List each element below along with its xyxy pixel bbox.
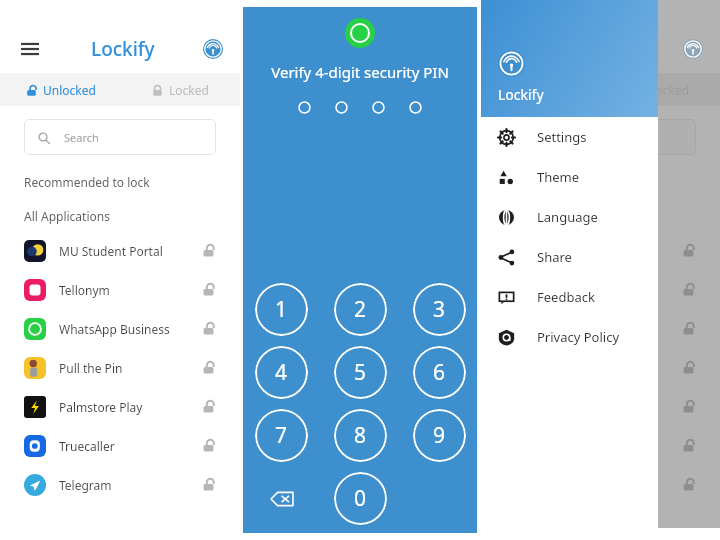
staticText: Tellonym bbox=[59, 282, 201, 298]
button[interactable]: Locked bbox=[120, 73, 240, 106]
button[interactable]: 3 bbox=[413, 283, 466, 336]
staticText: All Applications bbox=[505, 208, 591, 224]
button[interactable]: Privacy Policy bbox=[498, 317, 658, 357]
staticText: Lockify bbox=[91, 36, 155, 62]
staticText: 3 bbox=[433, 295, 446, 324]
staticText: Palmstore Play bbox=[59, 399, 201, 415]
staticText: All Applications bbox=[24, 208, 110, 224]
button[interactable]: 9 bbox=[413, 409, 466, 462]
staticText: Palmstore Play bbox=[540, 399, 681, 415]
button[interactable]: App logo bbox=[682, 38, 704, 60]
staticText: Unlocked bbox=[43, 82, 96, 98]
staticText: Tellonym bbox=[540, 282, 681, 298]
button[interactable]: 2 bbox=[334, 283, 387, 336]
button[interactable]: Search bbox=[24, 119, 216, 155]
button[interactable]: WhatsApp Business bbox=[24, 309, 216, 348]
button[interactable]: Theme bbox=[498, 157, 658, 197]
button[interactable]: Tellonym bbox=[505, 270, 696, 309]
button[interactable]: Telegram bbox=[505, 465, 696, 504]
staticText: 2 bbox=[354, 295, 367, 324]
staticText: 6 bbox=[433, 358, 446, 387]
staticText: Lockify bbox=[498, 85, 544, 104]
button[interactable]: Palmstore Play bbox=[24, 387, 216, 426]
staticText: Recommended to lock bbox=[24, 174, 150, 190]
staticText: Feedback bbox=[537, 288, 595, 306]
staticText: Verify 4-digit security PIN bbox=[271, 62, 449, 82]
staticText: Theme bbox=[537, 168, 580, 186]
button[interactable]: Palmstore Play bbox=[505, 387, 696, 426]
staticText: Pull the Pin bbox=[59, 360, 201, 376]
button[interactable]: Truecaller bbox=[24, 426, 216, 465]
staticText: Lockify bbox=[572, 36, 636, 62]
staticText: 1 bbox=[275, 295, 288, 324]
button[interactable]: App logo bbox=[202, 38, 224, 60]
button[interactable]: Language bbox=[498, 197, 658, 237]
staticText: Privacy Policy bbox=[537, 328, 620, 346]
button[interactable]: 0 bbox=[334, 472, 387, 525]
staticText: Settings bbox=[537, 128, 587, 146]
staticText: Search bbox=[64, 130, 99, 145]
staticText: Unlocked bbox=[523, 82, 576, 98]
button[interactable]: Tellonym bbox=[24, 270, 216, 309]
button[interactable]: 1 bbox=[255, 283, 308, 336]
staticText: Language bbox=[537, 208, 598, 226]
staticText: Truecaller bbox=[540, 438, 681, 454]
button[interactable]: Backspace bbox=[255, 472, 308, 525]
staticText: MU Student Portal bbox=[540, 243, 681, 259]
button[interactable]: Telegram bbox=[24, 465, 216, 504]
staticText: 0 bbox=[354, 484, 367, 513]
staticText: Truecaller bbox=[59, 438, 201, 454]
button[interactable]: Pull the Pin bbox=[505, 348, 696, 387]
button[interactable]: Search bbox=[505, 119, 696, 155]
staticText: 5 bbox=[354, 358, 367, 387]
staticText: Search bbox=[545, 130, 580, 145]
staticText: Locked bbox=[649, 82, 689, 98]
staticText: 4 bbox=[275, 358, 288, 387]
staticText: 9 bbox=[433, 421, 446, 450]
staticText: 8 bbox=[354, 421, 367, 450]
button[interactable]: 6 bbox=[413, 346, 466, 399]
button[interactable]: 8 bbox=[334, 409, 387, 462]
staticText: 7 bbox=[275, 421, 288, 450]
button[interactable]: Locked bbox=[600, 73, 720, 106]
button[interactable]: 4 bbox=[255, 346, 308, 399]
staticText: WhatsApp Business bbox=[59, 321, 201, 337]
button[interactable]: WhatsApp Business bbox=[505, 309, 696, 348]
button[interactable]: 5 bbox=[334, 346, 387, 399]
staticText: Telegram bbox=[540, 477, 681, 493]
button[interactable]: Unlocked bbox=[481, 73, 600, 106]
staticText: Pull the Pin bbox=[540, 360, 681, 376]
staticText: Locked bbox=[169, 82, 209, 98]
staticText: MU Student Portal bbox=[59, 243, 201, 259]
button[interactable]: Menu bbox=[16, 35, 44, 63]
button[interactable]: Truecaller bbox=[505, 426, 696, 465]
staticText: Telegram bbox=[59, 477, 201, 493]
button[interactable]: 7 bbox=[255, 409, 308, 462]
button[interactable]: Unlocked bbox=[0, 73, 120, 106]
staticText: Recommended to lock bbox=[505, 174, 631, 190]
button[interactable]: Feedback bbox=[498, 277, 658, 317]
button[interactable]: Pull the Pin bbox=[24, 348, 216, 387]
button[interactable]: MU Student Portal bbox=[505, 231, 696, 270]
button[interactable]: Share bbox=[498, 237, 658, 277]
button[interactable]: Settings bbox=[498, 117, 658, 157]
button[interactable]: Menu bbox=[497, 35, 525, 63]
staticText: Share bbox=[537, 248, 572, 266]
button[interactable]: MU Student Portal bbox=[24, 231, 216, 270]
staticText: WhatsApp Business bbox=[540, 321, 681, 337]
